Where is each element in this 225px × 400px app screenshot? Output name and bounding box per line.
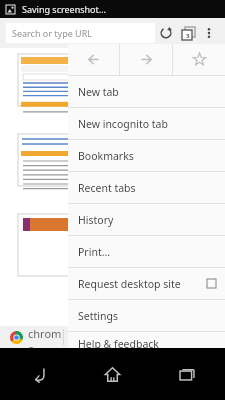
- button[interactable]: AnandTech: [0, 214, 225, 292]
- button[interactable]: Bookmarks: [118, 326, 171, 348]
- staticText: Settings: [78, 309, 118, 323]
- button[interactable]: Recents: [150, 348, 225, 400]
- button[interactable]: Kaskus - The: [0, 54, 225, 122]
- staticText: Bookmarks: [78, 149, 134, 163]
- button[interactable]: Back: [0, 348, 75, 400]
- button[interactable]: Reload: [155, 22, 177, 44]
- staticText: Help & feedback: [78, 337, 159, 351]
- button[interactable]: Recent tabs: [68, 172, 225, 203]
- staticText: Search or type URL: [12, 27, 93, 39]
- button[interactable]: Bookmark: [173, 44, 225, 75]
- button[interactable]: Help & feedback: [68, 332, 225, 356]
- button[interactable]: Apps: [64, 326, 117, 348]
- button[interactable]: New incognito tab: [68, 108, 225, 139]
- button[interactable]: Settings: [68, 300, 225, 331]
- staticText: 3: [186, 32, 190, 40]
- staticText: Print...: [78, 245, 111, 259]
- staticText: New tab: [78, 85, 119, 99]
- button[interactable]: New tab: [68, 76, 225, 107]
- button[interactable]: Bookmarks: [68, 140, 225, 171]
- staticText: chrome: [28, 326, 63, 348]
- staticText: Request desktop site: [78, 277, 181, 291]
- staticText: Saving screenshot...: [22, 3, 107, 15]
- button[interactable]: Back: [68, 44, 119, 75]
- button[interactable]: Search or type URL: [6, 23, 155, 43]
- button[interactable]: Home: [75, 348, 150, 400]
- staticText: Kaskus - The: [95, 190, 148, 202]
- button[interactable]: Print...: [68, 236, 225, 267]
- staticText: Kaskus - The: [95, 110, 148, 122]
- button[interactable]: Forward: [120, 44, 172, 75]
- staticText: History: [78, 213, 114, 227]
- staticText: New incognito tab: [78, 117, 168, 131]
- button[interactable]: History: [68, 204, 225, 235]
- staticText: Recent tabs: [78, 181, 136, 195]
- staticText: AnandTech: [98, 280, 145, 292]
- button[interactable]: chrome: [0, 326, 63, 348]
- button[interactable]: Kaskus - The: [0, 134, 225, 202]
- button[interactable]: Recent tabs: [172, 326, 225, 348]
- button[interactable]: More options: [199, 23, 219, 43]
- button[interactable]: Tabs: [177, 22, 199, 44]
- button[interactable]: Request desktop site: [68, 268, 225, 299]
